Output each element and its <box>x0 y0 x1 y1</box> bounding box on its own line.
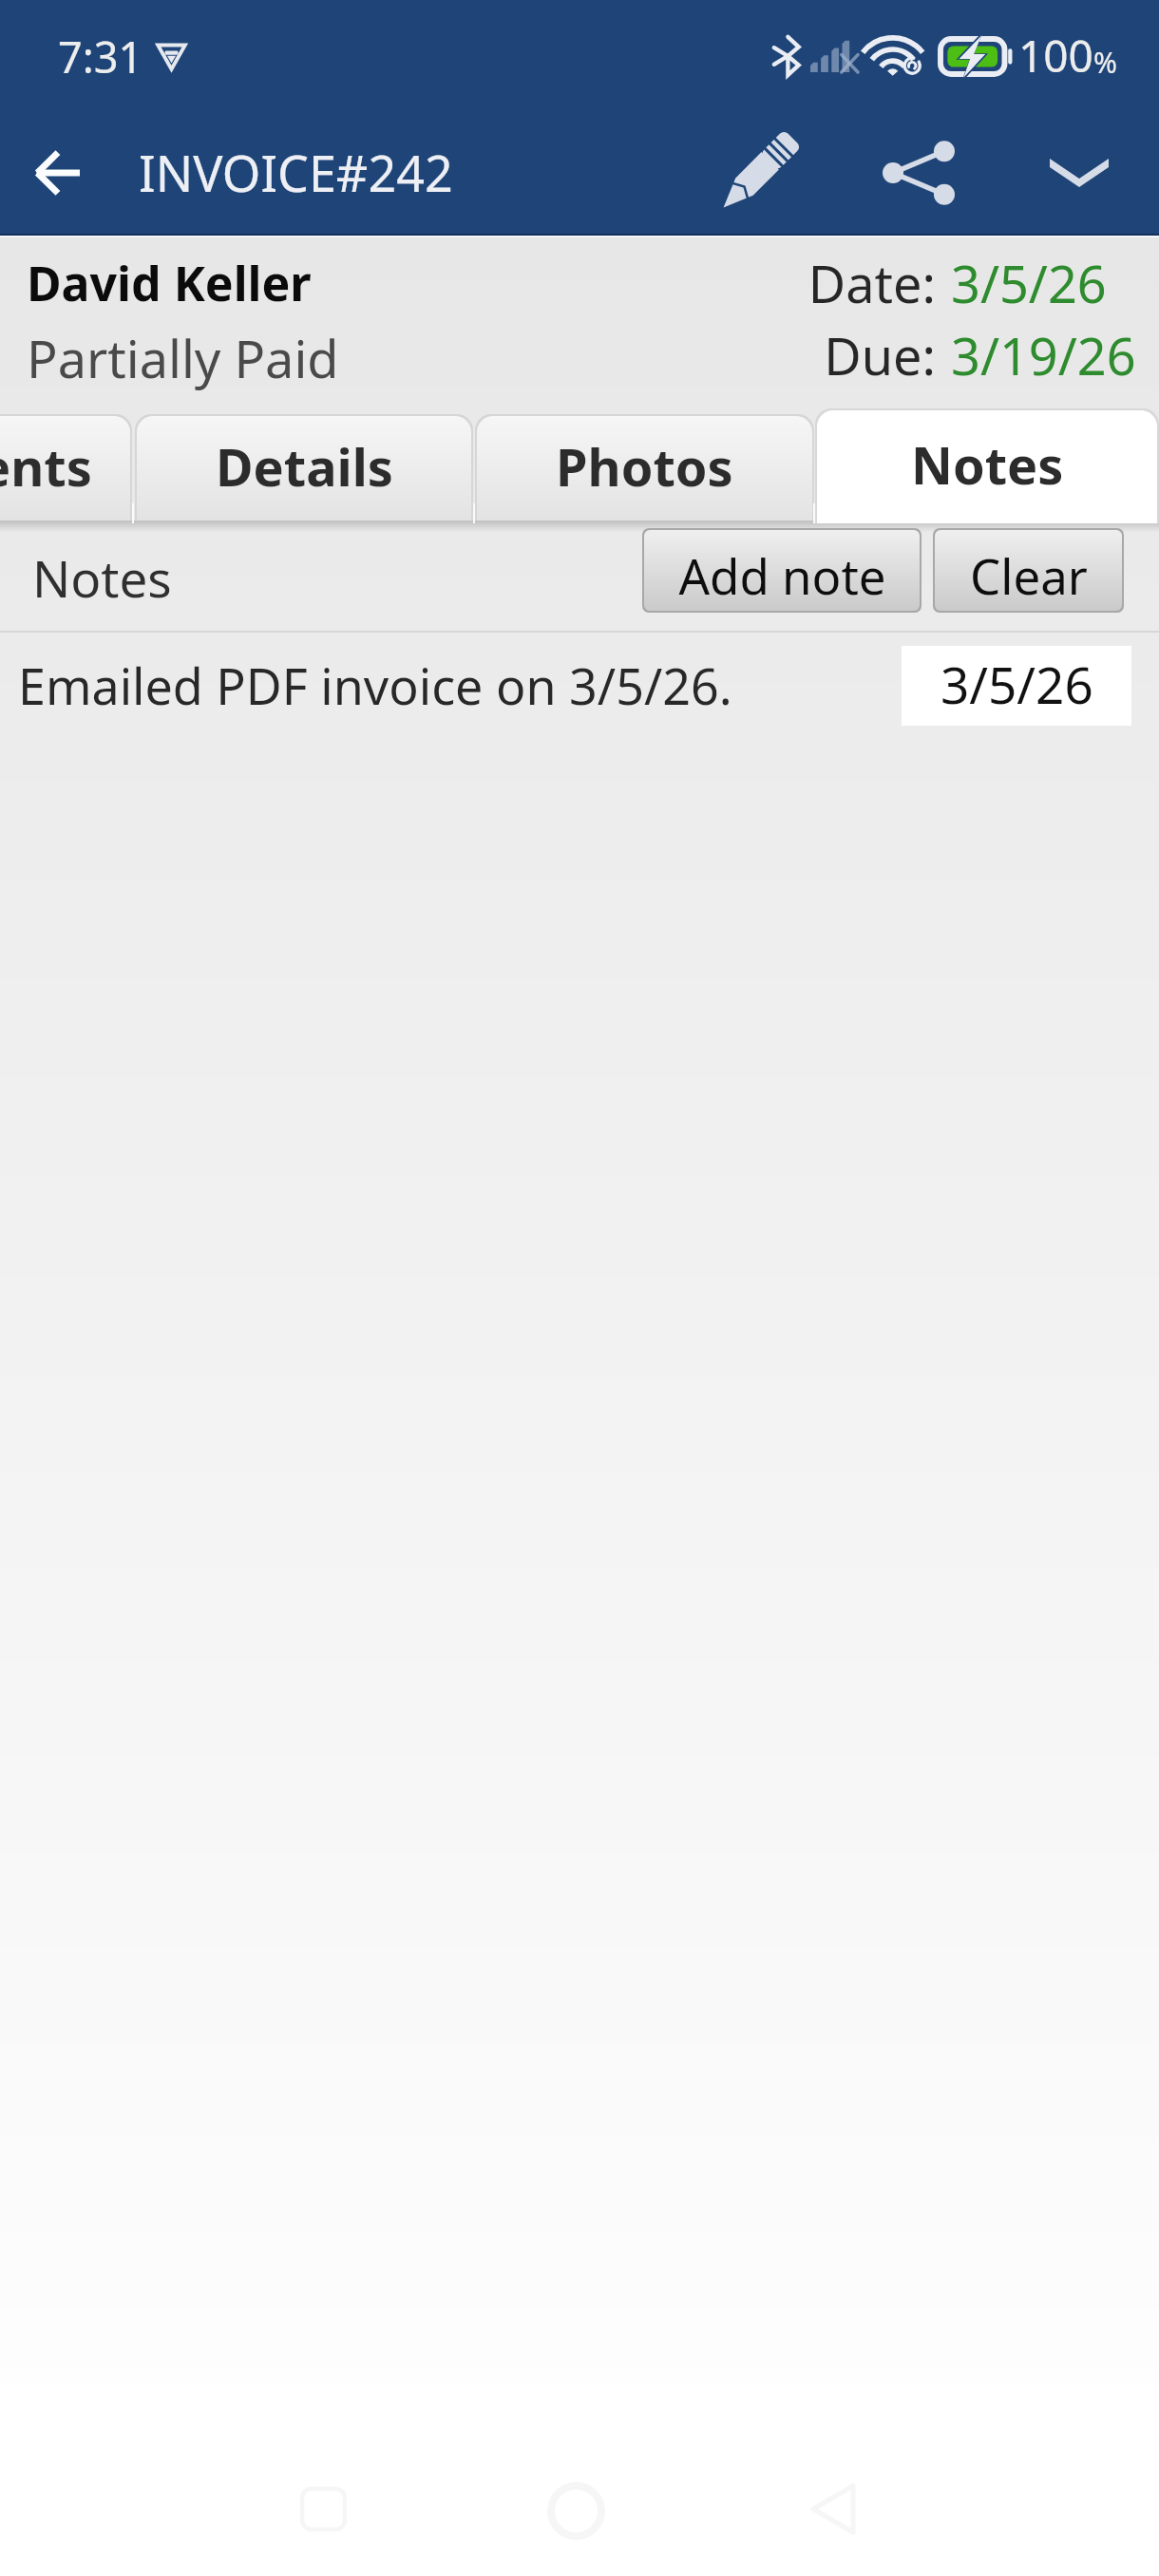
staticText: 100 <box>1018 26 1093 85</box>
button[interactable]: Add note <box>644 530 920 611</box>
button[interactable]: Photos <box>477 416 812 521</box>
button[interactable]: Share <box>839 112 998 234</box>
staticText: % <box>1093 43 1117 82</box>
staticText: ents <box>0 431 92 502</box>
staticText: INVOICE#242 <box>139 139 453 206</box>
button[interactable]: Edit <box>678 112 838 234</box>
staticText: Partially Paid <box>27 323 339 393</box>
button[interactable]: ents <box>0 416 130 521</box>
button[interactable]: Clear <box>935 530 1122 611</box>
staticText: 3/5/26 <box>951 248 1107 318</box>
staticText: 7:31 <box>58 28 143 85</box>
staticText: Clear <box>970 542 1088 608</box>
staticText: Emailed PDF invoice on 3/5/26. <box>18 652 732 719</box>
staticText: 3/19/26 <box>951 320 1136 390</box>
staticText: Notes <box>32 543 172 612</box>
staticText: Date: <box>807 248 936 318</box>
staticText: 3/5/26 <box>940 650 1093 718</box>
staticText: Add note <box>678 542 886 608</box>
button[interactable]: Notes <box>817 410 1157 523</box>
staticText: Details <box>216 431 393 502</box>
staticText: Due: <box>824 320 936 390</box>
button[interactable]: Back <box>34 112 80 234</box>
staticText: Notes <box>911 429 1064 500</box>
staticText: Photos <box>556 431 733 502</box>
button[interactable]: Details <box>137 416 471 521</box>
staticText: David Keller <box>27 251 312 315</box>
button[interactable]: More options <box>998 112 1159 234</box>
